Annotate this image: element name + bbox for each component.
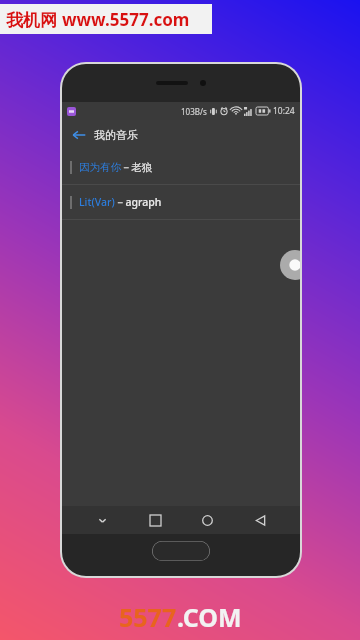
button[interactable]: 因为有你 xyxy=(62,150,300,184)
button[interactable]: Back xyxy=(62,120,300,150)
button[interactable]: Recent apps xyxy=(142,507,168,533)
button[interactable]: Assistive touch xyxy=(280,250,300,280)
button[interactable]: Back xyxy=(70,126,88,144)
staticText: 103B/s xyxy=(181,106,207,117)
staticText: 我机网 xyxy=(6,8,62,31)
staticText: Lit(Var) xyxy=(79,195,115,209)
staticText: －agraph xyxy=(115,195,162,209)
button[interactable]: Back xyxy=(247,507,273,533)
staticText: www.5577.com xyxy=(62,8,190,31)
button[interactable]: Lit(Var) xyxy=(62,185,300,219)
staticText: .COM xyxy=(177,600,242,634)
button[interactable]: Home button xyxy=(152,541,210,561)
staticText: －老狼 xyxy=(121,161,153,174)
staticText: 5577 xyxy=(119,600,177,634)
button[interactable]: Hide xyxy=(89,507,115,533)
staticText: 因为有你 xyxy=(79,161,121,174)
button[interactable]: Home xyxy=(194,507,220,533)
staticText: 我的音乐 xyxy=(94,128,138,142)
staticText: 10:24 xyxy=(273,105,295,117)
